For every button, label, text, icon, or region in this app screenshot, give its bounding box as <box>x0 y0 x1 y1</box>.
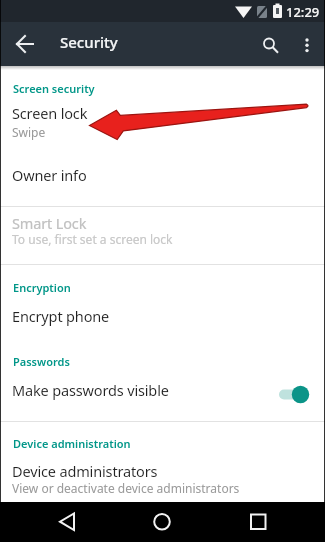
staticText: Swipe <box>12 124 46 140</box>
staticText: Security <box>60 32 118 52</box>
button[interactable] <box>8 27 42 61</box>
button[interactable]: Owner info <box>0 155 325 196</box>
staticText: Encryption <box>13 280 71 295</box>
button[interactable] <box>294 27 322 55</box>
staticText: Screen security <box>13 81 95 96</box>
staticText: Smart Lock <box>12 213 87 233</box>
staticText: Passwords <box>13 354 70 369</box>
staticText: 12:29 <box>286 3 320 21</box>
staticText: View or deactivate device administrators <box>12 480 240 496</box>
button[interactable] <box>217 502 325 542</box>
button[interactable] <box>254 27 286 59</box>
staticText: Encrypt phone <box>12 306 110 326</box>
button[interactable]: Screen lock <box>0 98 325 150</box>
staticText: Make passwords visible <box>12 380 169 400</box>
button[interactable]: Device administrators <box>0 453 325 502</box>
button[interactable] <box>109 502 217 542</box>
button[interactable]: Encrypt phone <box>0 297 325 337</box>
staticText: Device administration <box>13 436 131 451</box>
staticText: To use, first set a screen lock <box>12 231 173 247</box>
staticText: Owner info <box>12 165 87 185</box>
button[interactable] <box>0 502 109 542</box>
button[interactable]: Smart Lock <box>0 207 325 257</box>
staticText: Device administrators <box>12 461 158 481</box>
button[interactable]: Make passwords visible <box>0 371 325 415</box>
staticText: Screen lock <box>12 103 88 123</box>
